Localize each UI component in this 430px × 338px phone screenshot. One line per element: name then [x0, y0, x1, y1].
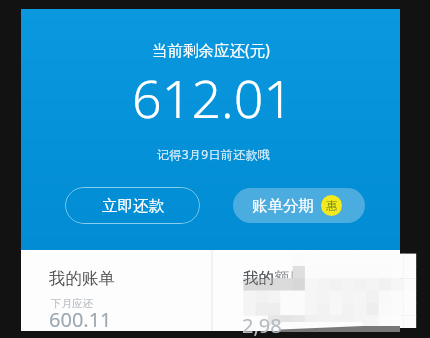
staticText: 额度: [274, 268, 305, 288]
other: 优惠: [321, 195, 342, 216]
staticText: 下月应还: [51, 297, 93, 310]
button[interactable]: 我的账单: [21, 250, 211, 331]
staticText: 我的: [243, 268, 274, 288]
staticText: 2,98: [242, 312, 282, 338]
staticText: 惠: [326, 199, 338, 213]
staticText: 我的账单: [49, 268, 115, 289]
button[interactable]: 我的: [213, 250, 400, 331]
button[interactable]: 账单分期: [233, 188, 365, 223]
staticText: 立即还款: [102, 196, 164, 216]
button[interactable]: 立即还款: [65, 187, 200, 224]
staticText: 我的: [243, 268, 274, 288]
staticText: 账单分期: [252, 196, 314, 216]
staticText: 记得3月9日前还款哦: [157, 146, 271, 162]
staticText: 当前剩余应还(元): [152, 39, 270, 60]
staticText: 612.01: [132, 62, 294, 133]
staticText: 600.11: [49, 306, 112, 333]
